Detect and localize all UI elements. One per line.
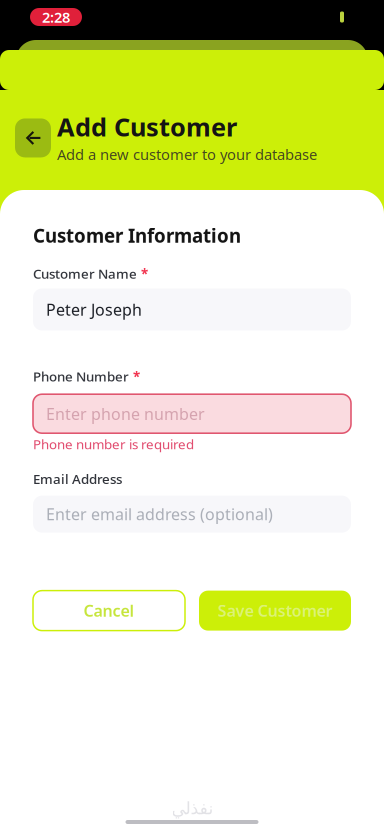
staticText: Enter email address (optional) <box>46 503 273 525</box>
staticText: Add a new customer to your database <box>57 144 317 164</box>
staticText: Save Customer <box>217 600 332 621</box>
button[interactable]: Back <box>15 115 51 157</box>
staticText: * <box>133 367 140 385</box>
staticText: Cancel <box>83 600 134 621</box>
staticText: * <box>141 265 148 282</box>
staticText: Phone number is required <box>33 435 194 453</box>
staticText: Phone Number <box>33 367 129 385</box>
staticText: Enter phone number <box>46 403 205 424</box>
staticText: نفذلي <box>171 798 213 818</box>
staticText: Customer Name <box>33 265 137 282</box>
staticText: Email Address <box>33 470 122 488</box>
staticText: Customer Information <box>33 223 241 248</box>
button[interactable]: Cancel <box>33 591 185 631</box>
staticText: 2:28 <box>42 7 70 27</box>
staticText: Peter Joseph <box>46 299 142 320</box>
button[interactable]: Clock <box>30 8 82 26</box>
staticText: Add Customer <box>57 110 237 143</box>
button[interactable]: Save Customer <box>199 591 351 631</box>
